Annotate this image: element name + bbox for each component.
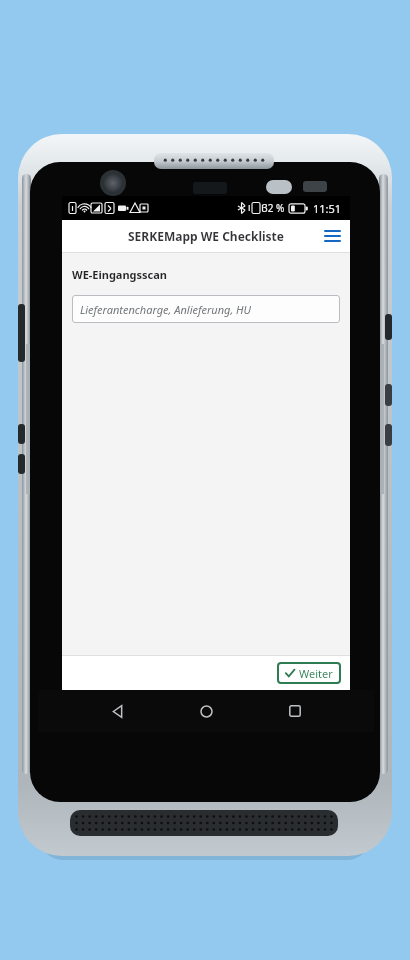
button[interactable]: Lieferantencharge, Anlieferung, HU [72, 295, 340, 323]
button[interactable]: Menu [320, 224, 344, 248]
button[interactable]: Home [189, 694, 223, 728]
staticText: Weiter [299, 666, 333, 681]
staticText: 11:51 [313, 201, 342, 216]
staticText: SERKEMapp WE Checkliste [128, 228, 284, 244]
button[interactable]: Weiter [277, 662, 341, 684]
button[interactable]: Back [100, 694, 134, 728]
staticText: Lieferantencharge, Anlieferung, HU [80, 302, 252, 317]
button[interactable]: Recent apps [278, 694, 312, 728]
staticText: 32 % [262, 201, 285, 215]
staticText: WE-Eingangsscan [72, 267, 168, 282]
